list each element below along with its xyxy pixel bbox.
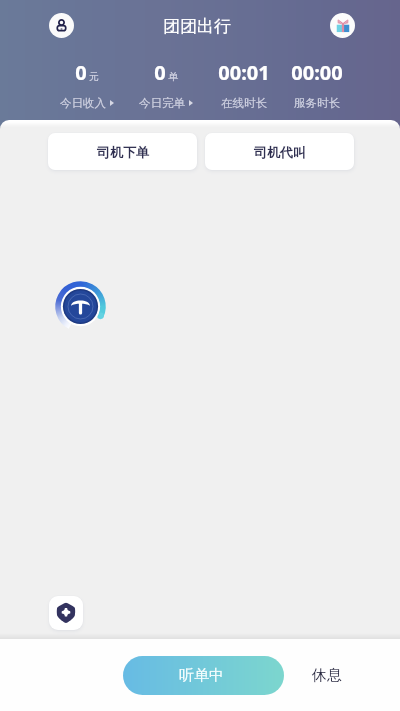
staticText: 今日收入 (60, 96, 106, 110)
staticText: 在线时长 (221, 96, 267, 110)
button[interactable]: 听单中 (123, 656, 284, 695)
button[interactable]: Safety center (49, 596, 83, 630)
staticText: 00:01 (218, 59, 270, 86)
staticText: 00:00 (291, 59, 343, 86)
button[interactable]: 00:00 (278, 59, 356, 110)
staticText: 司机下单 (97, 144, 149, 160)
staticText: 元 (89, 70, 99, 83)
button[interactable]: 休息 (305, 656, 349, 695)
staticText: 单 (168, 70, 178, 83)
button[interactable]: 0 (127, 59, 205, 110)
staticText: 服务时长 (294, 96, 340, 110)
button[interactable]: Profile (49, 13, 74, 38)
button[interactable]: 司机代叫 (205, 133, 354, 170)
staticText: 0 (75, 59, 87, 86)
button[interactable]: 00:01 (205, 59, 283, 110)
staticText: 休息 (312, 666, 342, 685)
button[interactable]: 0 (48, 59, 126, 110)
button[interactable]: Gift (330, 13, 355, 38)
staticText: 今日完单 (139, 96, 185, 110)
button[interactable]: 司机下单 (48, 133, 197, 170)
staticText: 司机代叫 (254, 144, 306, 160)
staticText: 0 (154, 59, 166, 86)
staticText: 听单中 (179, 666, 224, 685)
staticText: 团团出行 (163, 16, 231, 37)
